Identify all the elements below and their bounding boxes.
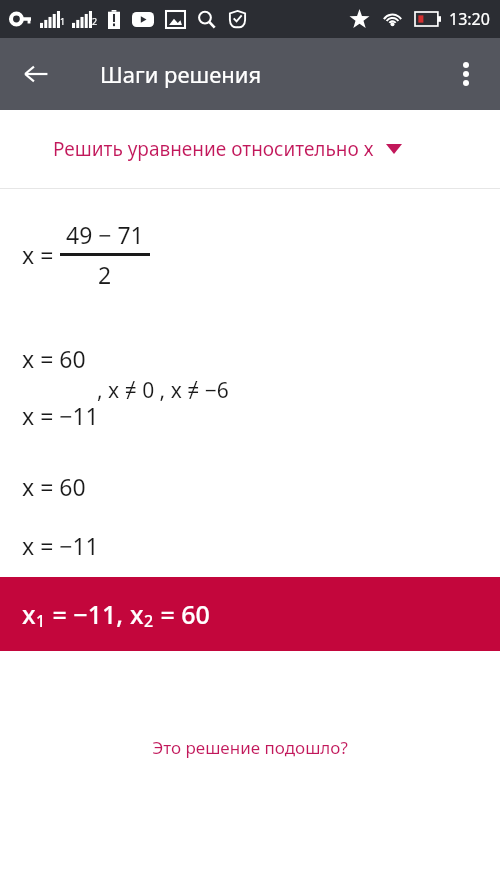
staticText: 1 [36, 610, 46, 632]
staticText: = −11, [46, 597, 130, 631]
staticText: x = [22, 239, 54, 270]
staticText: 2 [92, 15, 98, 27]
staticText: 2 [98, 259, 112, 290]
button[interactable]: Решить уравнение относительно х [0, 110, 500, 188]
staticText: Решить уравнение относительно х [53, 136, 374, 162]
staticText: x = 60 [22, 343, 86, 374]
staticText: x = −11 [22, 400, 99, 431]
staticText: x [22, 597, 36, 631]
staticText: 13:20 [449, 8, 490, 30]
staticText: 2 [144, 610, 154, 632]
button[interactable]: More options [442, 50, 490, 98]
staticText: 49 − 71 [66, 219, 144, 250]
staticText: Шаги решения [100, 59, 262, 89]
staticText: Это решение подошло? [152, 736, 348, 759]
button[interactable]: Back [12, 50, 60, 98]
staticText: x = −11 [22, 530, 99, 561]
button[interactable]: x [0, 577, 500, 651]
staticText: , x ≠ 0 , x ≠ −6 [97, 376, 229, 405]
button[interactable]: Это решение подошло? [0, 736, 500, 759]
staticText: x = 60 [22, 471, 86, 502]
staticText: 1 [60, 15, 66, 27]
staticText: x [130, 597, 144, 631]
staticText: = 60 [154, 597, 210, 631]
